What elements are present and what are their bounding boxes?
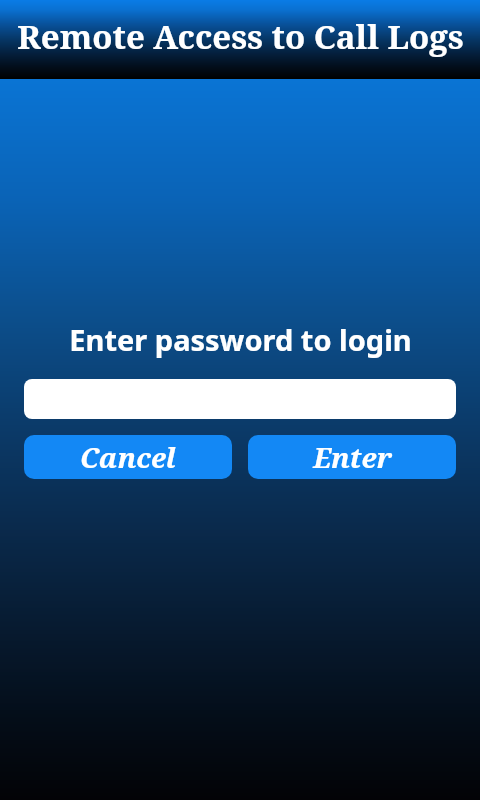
staticText: Enter password to login: [69, 320, 412, 359]
button[interactable]: Enter: [248, 435, 456, 479]
staticText: Cancel: [80, 438, 176, 476]
staticText: Enter: [313, 438, 392, 476]
button[interactable]: Cancel: [24, 435, 232, 479]
button[interactable]: Password input field: [24, 379, 456, 419]
staticText: Remote Access to Call Logs: [17, 14, 464, 59]
